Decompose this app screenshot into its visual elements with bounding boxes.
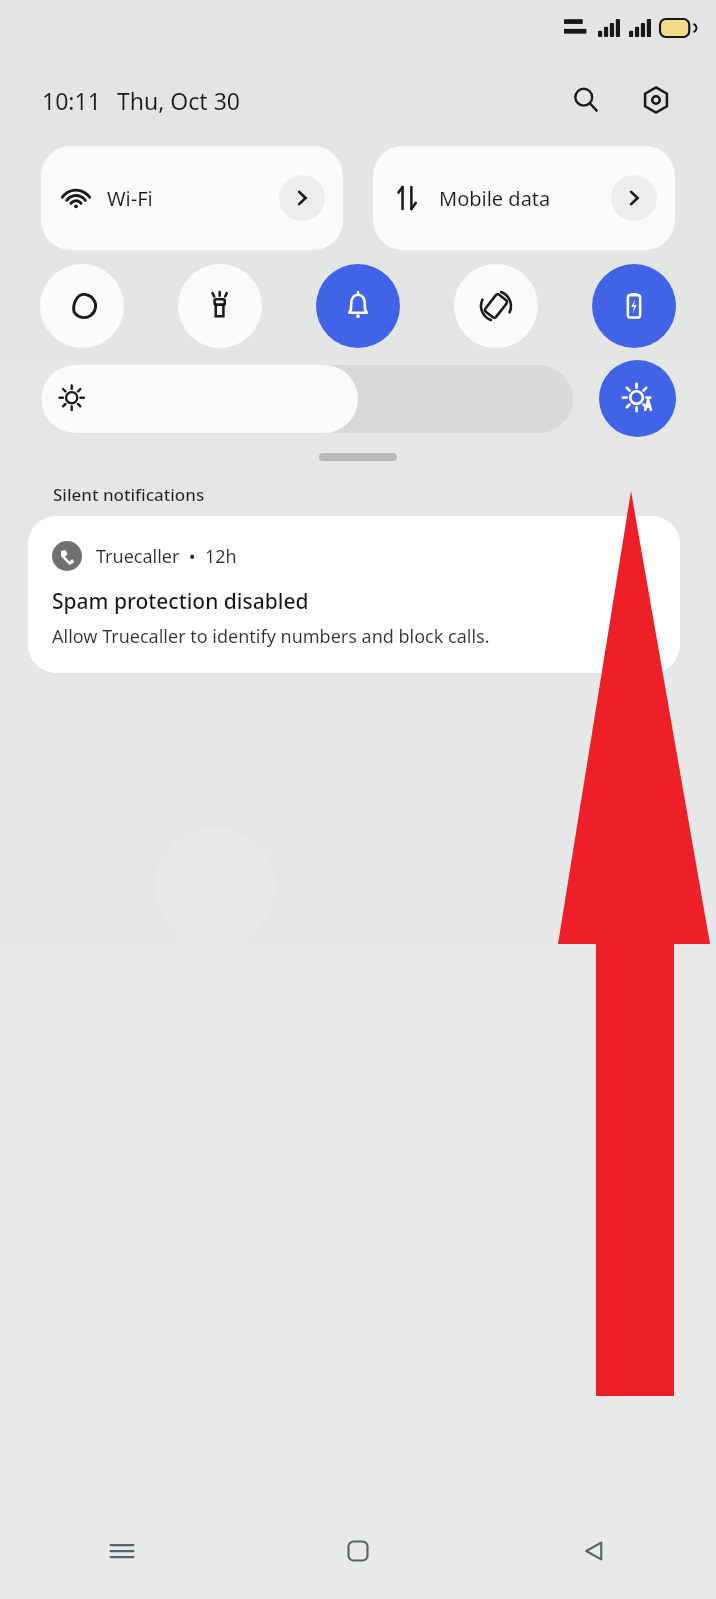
button[interactable]: Search bbox=[560, 74, 612, 126]
button[interactable]: Do not disturb bbox=[40, 264, 124, 348]
button[interactable]: Auto rotate bbox=[454, 264, 538, 348]
staticText: Wi-Fi bbox=[107, 185, 153, 212]
button[interactable]: Settings bbox=[630, 74, 682, 126]
button[interactable] bbox=[41, 365, 573, 433]
button[interactable]: Flashlight bbox=[178, 264, 262, 348]
button[interactable]: Mobile data bbox=[373, 146, 675, 250]
button[interactable]: Back bbox=[562, 1519, 626, 1583]
staticText: Spam protection disabled bbox=[52, 587, 309, 616]
button[interactable]: Home bbox=[326, 1519, 390, 1583]
staticText: Silent notifications bbox=[53, 483, 205, 506]
staticText: 10:11 bbox=[42, 85, 101, 116]
button[interactable]: Wi-Fi bbox=[41, 146, 343, 250]
button[interactable]: Recents bbox=[90, 1519, 154, 1583]
staticText: Thu, Oct 30 bbox=[117, 85, 240, 116]
staticText: Allow Truecaller to identify numbers and… bbox=[52, 624, 490, 649]
staticText: Truecaller • 12h bbox=[96, 544, 237, 569]
staticText: Mobile data bbox=[439, 185, 551, 212]
button[interactable]: Ring mode bbox=[316, 264, 400, 348]
button[interactable]: Battery saver bbox=[592, 264, 676, 348]
button[interactable]: Truecaller • 12h bbox=[28, 516, 680, 673]
button[interactable]: Auto brightness bbox=[599, 360, 676, 437]
